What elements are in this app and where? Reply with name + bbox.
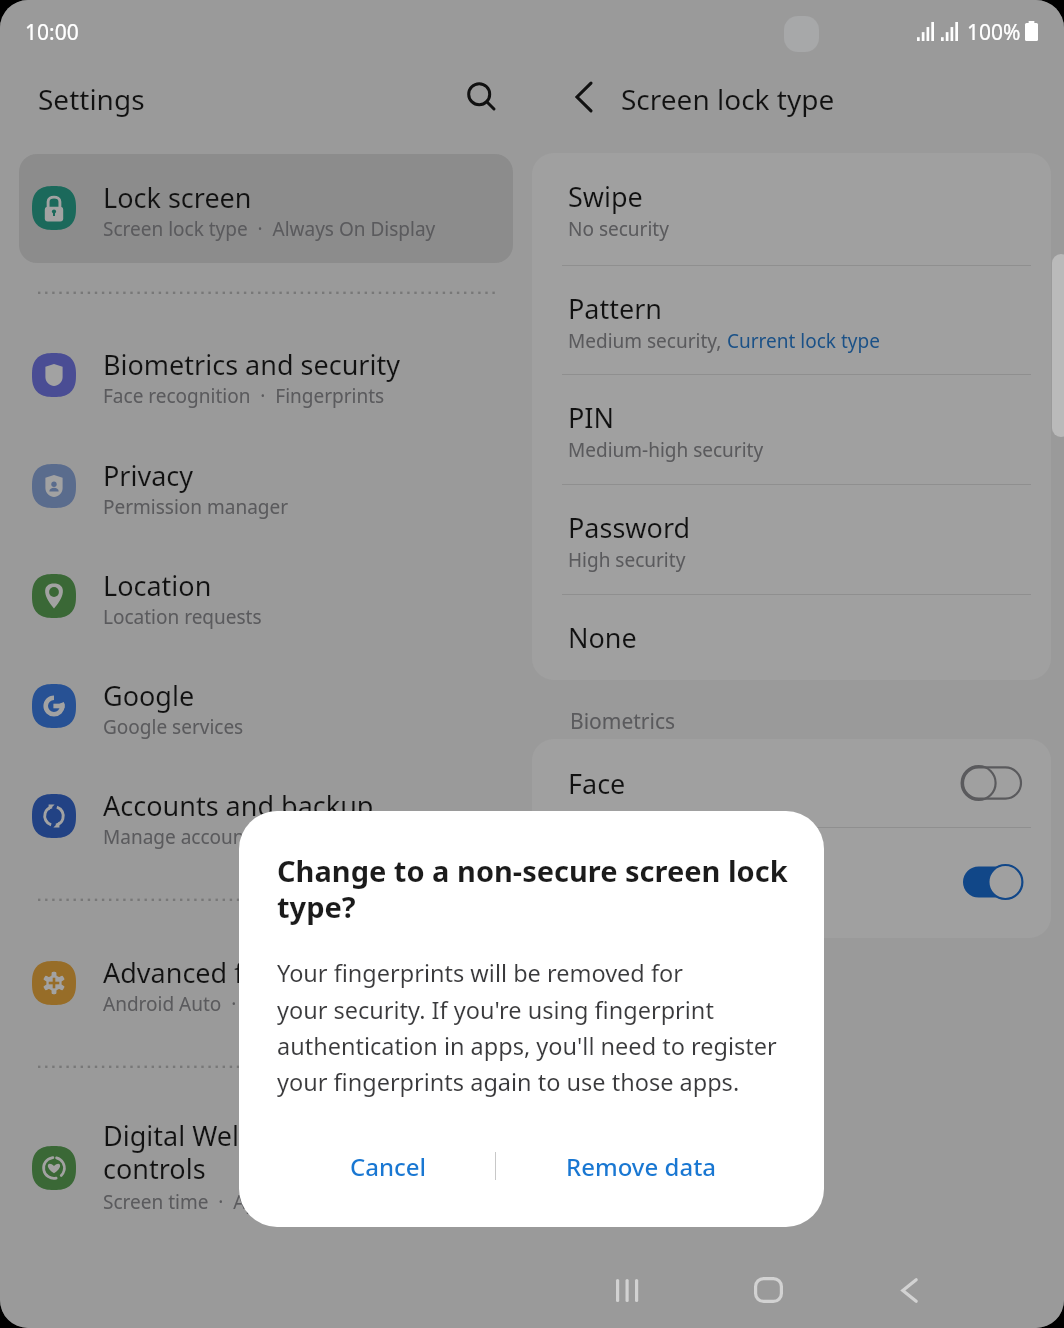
staticText: Google services [103,714,244,740]
staticText: Lock screen [103,179,252,216]
staticText: 100% [967,18,1021,47]
staticText: Android Auto · Labs [103,991,288,1017]
staticText: Biometrics and security [103,346,400,383]
staticText: Cancel [350,1150,427,1183]
staticText: 10:00 [25,18,79,47]
staticText: Permission manager [103,494,289,520]
button[interactable]: Fingerprints on [952,858,1032,906]
staticText: Location requests [103,604,262,630]
button[interactable]: Remove data [521,1126,761,1206]
staticText: Change to a non-secure screen lock type? [277,851,789,926]
staticText: Remove data [566,1150,717,1183]
button[interactable] [0,320,532,430]
staticText: Your fingerprints will be removed for yo… [277,957,797,1098]
button[interactable] [532,827,1051,938]
button[interactable] [532,739,1051,827]
staticText: High security [568,547,686,573]
button[interactable] [532,265,1051,374]
button[interactable] [532,153,1051,265]
button[interactable] [532,484,1051,594]
staticText: PIN [568,399,615,436]
staticText: Password [568,509,691,546]
button[interactable]: Face off [952,759,1032,807]
staticText: Accounts and backup [103,787,374,824]
button[interactable] [0,431,532,541]
staticText: Screen time · App timers [103,1189,331,1215]
staticText: Manage accounts · Smart Switch [103,824,402,850]
staticText: Google [103,677,195,714]
staticText: Screen lock type [621,80,835,118]
staticText: Settings [38,80,145,118]
staticText: Swipe [568,178,643,215]
staticText: Medium-high security [568,437,764,463]
button[interactable] [0,928,532,1038]
button[interactable] [532,374,1051,484]
staticText: Privacy [103,457,194,494]
button[interactable] [532,594,1051,680]
staticText: Digital Wellbeing and parental controls [103,1117,487,1187]
button[interactable] [0,1102,532,1232]
staticText: Location [103,567,212,604]
button[interactable] [0,541,532,651]
button[interactable] [0,651,532,761]
staticText: Advanced features [103,954,340,991]
button[interactable]: Search [454,69,510,125]
button[interactable] [19,154,513,263]
staticText: Biometrics [570,707,676,736]
button[interactable] [0,761,532,871]
button[interactable]: Back [874,1255,944,1325]
staticText: Medium security, [568,328,727,354]
staticText: Fingerprints [568,864,723,901]
button[interactable]: Recents [593,1255,663,1325]
staticText: No security [568,216,669,242]
button[interactable]: Cancel [268,1126,508,1206]
staticText: Pattern [568,290,663,327]
button[interactable]: Navigate up [556,69,612,125]
button[interactable]: Home [733,1255,803,1325]
staticText: None [568,619,637,656]
staticText: Screen lock type · Always On Display [103,216,436,242]
staticText: Face recognition · Fingerprints [103,383,385,409]
staticText: Current lock type [727,328,880,354]
staticText: Face [568,765,626,802]
